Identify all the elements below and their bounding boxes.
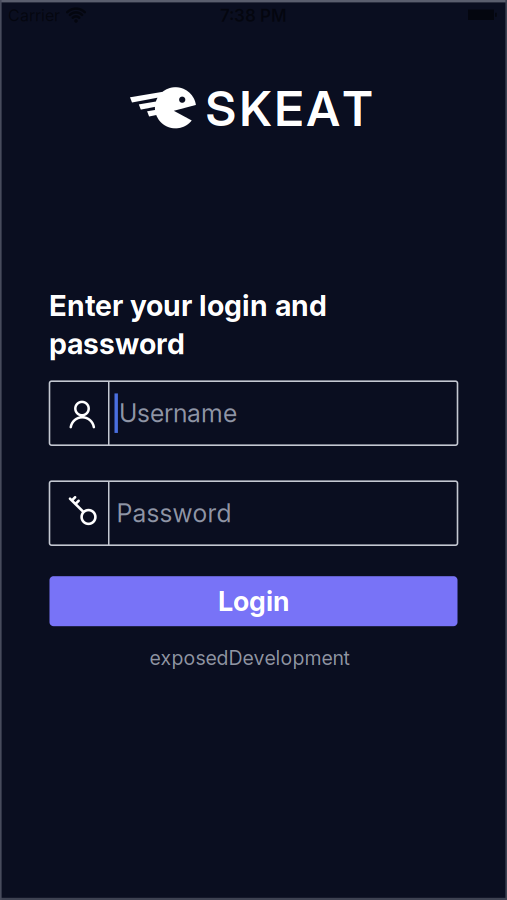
staticText: exposedDevelopment bbox=[149, 646, 349, 670]
button[interactable]: Username bbox=[49, 381, 457, 445]
staticText: Login bbox=[218, 585, 289, 617]
staticText: S K E A T bbox=[205, 79, 372, 138]
button[interactable]: Password bbox=[49, 481, 457, 545]
staticText: Password bbox=[116, 498, 231, 528]
button[interactable]: Login bbox=[49, 576, 457, 626]
staticText: password bbox=[49, 326, 185, 361]
staticText: 7:38 PM bbox=[220, 5, 287, 26]
staticText: Enter your login and bbox=[49, 288, 327, 323]
staticText: Username bbox=[119, 398, 237, 428]
staticText: Carrier bbox=[8, 6, 60, 25]
